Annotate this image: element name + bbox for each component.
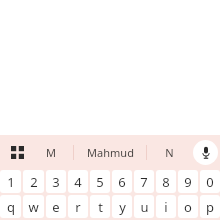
- staticText: e: [52, 198, 60, 216]
- staticText: y: [119, 198, 126, 216]
- button[interactable]: y: [112, 195, 132, 218]
- button[interactable]: q: [0, 195, 21, 218]
- button[interactable]: 0: [200, 170, 220, 193]
- button[interactable]: 9: [178, 170, 198, 193]
- staticText: 4: [74, 173, 82, 191]
- staticText: q: [7, 198, 15, 216]
- button[interactable]: o: [178, 195, 198, 218]
- staticText: 8: [162, 173, 170, 191]
- button[interactable]: p: [200, 195, 220, 218]
- button[interactable]: Mahmud: [74, 135, 146, 169]
- button[interactable]: 2: [23, 170, 44, 193]
- staticText: N: [165, 145, 174, 160]
- button[interactable]: r: [68, 195, 88, 218]
- staticText: r: [75, 198, 81, 216]
- staticText: 1: [7, 173, 15, 191]
- button[interactable]: N: [147, 135, 192, 169]
- staticText: 7: [140, 173, 148, 191]
- button[interactable]: 5: [90, 170, 110, 193]
- button[interactable]: M: [28, 135, 73, 169]
- button[interactable]: Voice input: [193, 140, 218, 165]
- staticText: o: [184, 198, 192, 216]
- button[interactable]: 1: [0, 170, 21, 193]
- button[interactable]: 6: [112, 170, 132, 193]
- staticText: p: [206, 198, 214, 216]
- staticText: i: [164, 198, 168, 216]
- button[interactable]: Keyboard layouts: [6, 141, 28, 163]
- button[interactable]: t: [90, 195, 110, 218]
- staticText: 5: [96, 173, 104, 191]
- staticText: 0: [206, 173, 214, 191]
- staticText: 6: [118, 173, 126, 191]
- button[interactable]: 3: [46, 170, 66, 193]
- staticText: t: [98, 198, 103, 216]
- button[interactable]: 8: [156, 170, 176, 193]
- button[interactable]: w: [23, 195, 44, 218]
- staticText: 3: [52, 173, 60, 191]
- button[interactable]: u: [134, 195, 154, 218]
- staticText: 2: [30, 173, 38, 191]
- staticText: u: [140, 198, 149, 216]
- button[interactable]: i: [156, 195, 176, 218]
- staticText: 9: [184, 173, 192, 191]
- staticText: w: [28, 198, 39, 216]
- staticText: Mahmud: [87, 145, 134, 160]
- button[interactable]: e: [46, 195, 66, 218]
- button[interactable]: 7: [134, 170, 154, 193]
- staticText: M: [46, 145, 56, 160]
- button[interactable]: 4: [68, 170, 88, 193]
